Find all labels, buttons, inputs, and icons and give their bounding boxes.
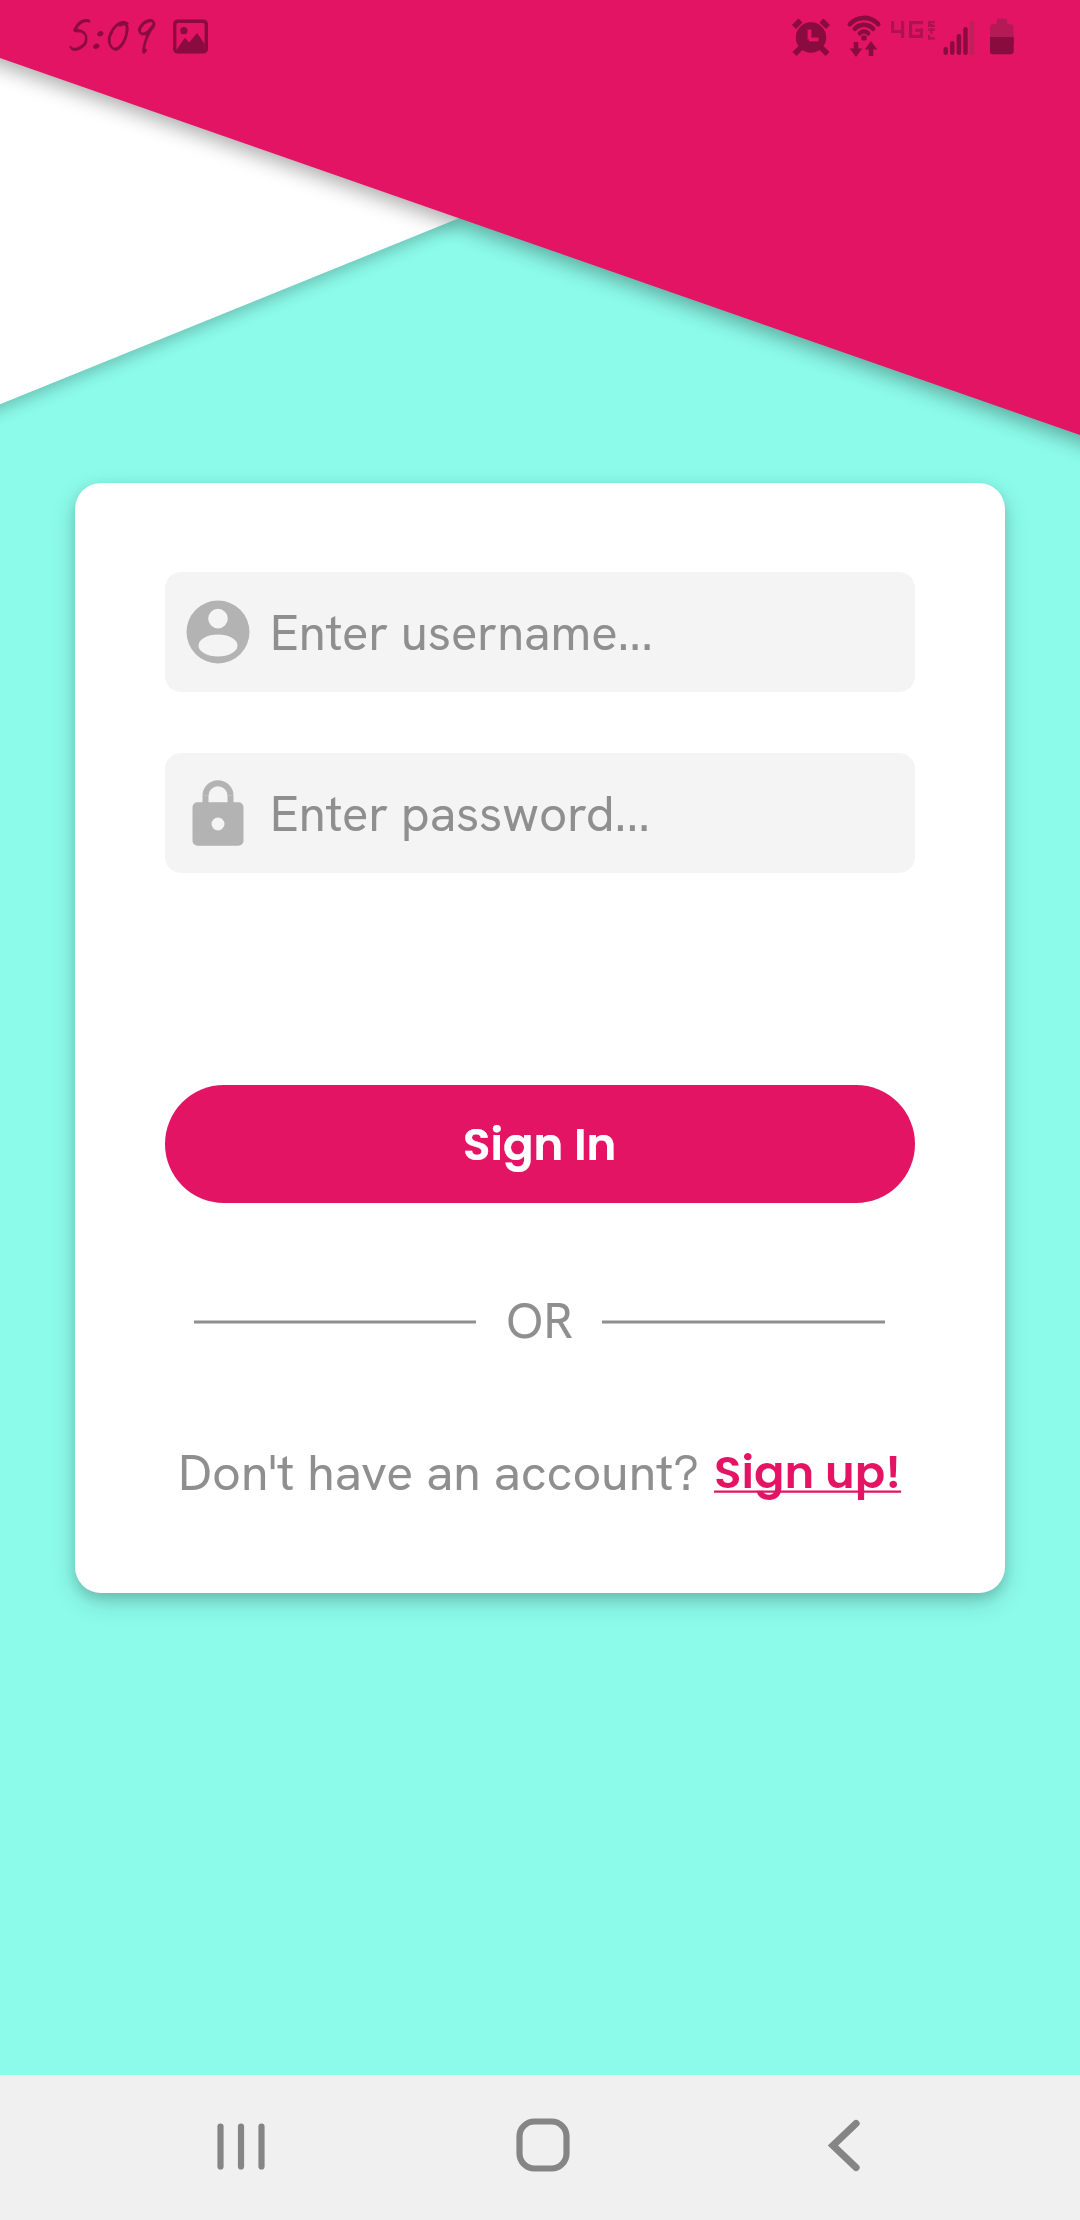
staticText: Sign In (463, 1113, 617, 1176)
button[interactable]: Home (480, 2088, 600, 2208)
button[interactable]: Sign up! (714, 1441, 902, 1504)
staticText: Don't have an account? (178, 1440, 700, 1505)
staticText: 5:09 (62, 0, 152, 69)
staticText: OR (506, 1288, 574, 1353)
staticText: Enter password... (270, 782, 650, 846)
staticText: Enter username... (270, 601, 653, 665)
button[interactable]: Recent apps (181, 2088, 301, 2208)
button[interactable]: Sign In (165, 1085, 915, 1203)
button[interactable]: Enter username... (165, 572, 915, 692)
button[interactable]: Back (779, 2088, 899, 2208)
button[interactable]: Enter password... (165, 753, 915, 873)
